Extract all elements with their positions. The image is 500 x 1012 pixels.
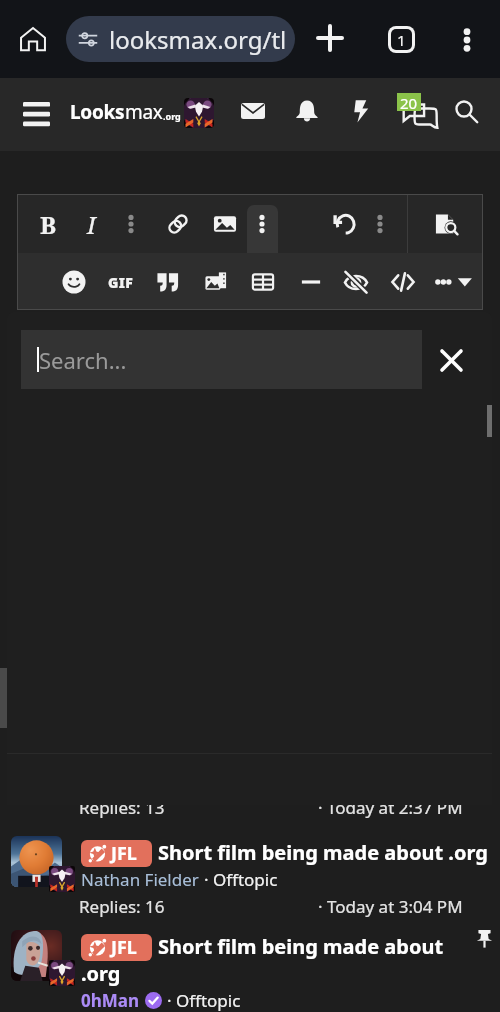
- staticText: Replies: 16: [79, 895, 165, 918]
- button[interactable]: Close search: [428, 337, 474, 383]
- staticText: · Today at 2:37 PM: [318, 796, 463, 819]
- button[interactable]: Menu: [13, 91, 60, 138]
- button[interactable]: Bold: [31, 207, 65, 241]
- staticText: · Today at 3:04 PM: [318, 895, 463, 918]
- button[interactable]: Browser menu: [446, 19, 487, 60]
- button[interactable]: Author avatar: [0, 827, 500, 921]
- button[interactable]: Whats new: [341, 91, 381, 131]
- button[interactable]: Spoiler: [339, 265, 373, 299]
- button[interactable]: Inbox: [233, 91, 273, 131]
- button[interactable]: Undo: [327, 207, 361, 241]
- button[interactable]: Author avatar: [0, 922, 500, 1012]
- button[interactable]: Search: [446, 91, 486, 131]
- staticText: 20: [400, 93, 418, 111]
- button[interactable]: Account: [184, 98, 214, 128]
- button[interactable]: JFL: [81, 840, 152, 867]
- button[interactable]: Link: [161, 207, 195, 241]
- button[interactable]: Search...: [21, 330, 422, 389]
- staticText: GIF: [108, 273, 134, 292]
- staticText: Nathan Fielder: [81, 868, 199, 891]
- button[interactable]: looksmax.org/tl: [66, 16, 295, 62]
- button[interactable]: Image: [208, 207, 242, 241]
- staticText: I: [87, 208, 96, 241]
- staticText: Short film being made about: [158, 933, 444, 960]
- button[interactable]: Alerts: [287, 91, 327, 131]
- button[interactable]: Looks: [70, 99, 181, 125]
- staticText: · Offtopic: [204, 868, 278, 891]
- button[interactable]: New tab: [310, 18, 350, 58]
- button[interactable]: More options: [432, 265, 475, 299]
- staticText: Short film being made about .org: [158, 839, 488, 866]
- button[interactable]: More formatting: [245, 207, 279, 241]
- button[interactable]: Italic: [74, 207, 108, 241]
- staticText: Replies: 13: [79, 796, 165, 819]
- staticText: .org: [81, 960, 121, 987]
- staticText: · Offtopic: [167, 989, 241, 1012]
- staticText: Search...: [39, 345, 127, 375]
- button[interactable]: Table: [246, 265, 280, 299]
- button[interactable]: Preview: [429, 207, 463, 241]
- staticText: 0hMan: [81, 989, 140, 1012]
- button[interactable]: Last poster avatar: [49, 960, 75, 986]
- button[interactable]: Emoji: [57, 265, 91, 299]
- button[interactable]: More formatting: [114, 207, 148, 241]
- button[interactable]: Home: [13, 19, 53, 59]
- button[interactable]: Pinned thread: [468, 922, 500, 954]
- button[interactable]: Media: [199, 265, 233, 299]
- staticText: 1: [397, 30, 406, 50]
- button[interactable]: Horizontal rule: [294, 265, 328, 299]
- staticText: JFL: [111, 841, 137, 866]
- button[interactable]: Author avatar: [11, 930, 62, 981]
- button[interactable]: JFL: [81, 934, 152, 961]
- button[interactable]: Quote: [151, 265, 185, 299]
- staticText: B: [40, 208, 57, 241]
- staticText: JFL: [111, 935, 137, 960]
- staticText: max: [125, 99, 163, 125]
- button[interactable]: Tabs: [381, 19, 421, 59]
- button[interactable]: Chat, 20 unread: [393, 90, 439, 136]
- button[interactable]: More formatting: [363, 207, 397, 241]
- staticText: looksmax.org/tl: [109, 23, 287, 56]
- button[interactable]: Insert GIF: [104, 265, 138, 299]
- button[interactable]: Code: [386, 265, 420, 299]
- button[interactable]: Author avatar: [11, 836, 62, 887]
- button[interactable]: Last poster avatar: [49, 866, 75, 892]
- staticText: Looks: [70, 99, 125, 125]
- staticText: .org: [163, 110, 181, 122]
